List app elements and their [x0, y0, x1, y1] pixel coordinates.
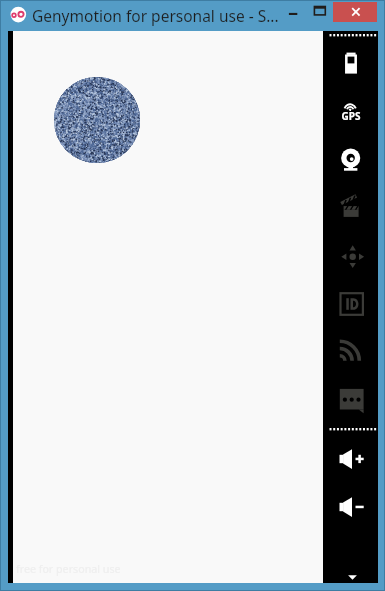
staticText: Genymotion for personal use - S...	[32, 5, 279, 26]
staticText: free for personal use	[16, 562, 121, 577]
button[interactable]: SMS	[323, 377, 378, 421]
button[interactable]: Identifiers	[323, 282, 378, 326]
button[interactable]: Battery	[323, 41, 378, 85]
button[interactable]: Maximize	[308, 0, 332, 27]
button[interactable]: Close	[333, 2, 377, 22]
button[interactable]: Volume down	[323, 485, 378, 529]
button[interactable]: Rotate	[323, 234, 378, 278]
button[interactable]: Collapse toolbar	[323, 571, 378, 585]
button[interactable]: Camera	[323, 136, 378, 180]
button[interactable]: Network	[323, 329, 378, 373]
button[interactable]: Volume up	[323, 437, 378, 481]
button[interactable]: Minimize	[281, 0, 305, 27]
button[interactable]: Record	[323, 185, 378, 229]
staticText: GPS	[340, 109, 362, 123]
button[interactable]: GPS	[323, 89, 378, 133]
